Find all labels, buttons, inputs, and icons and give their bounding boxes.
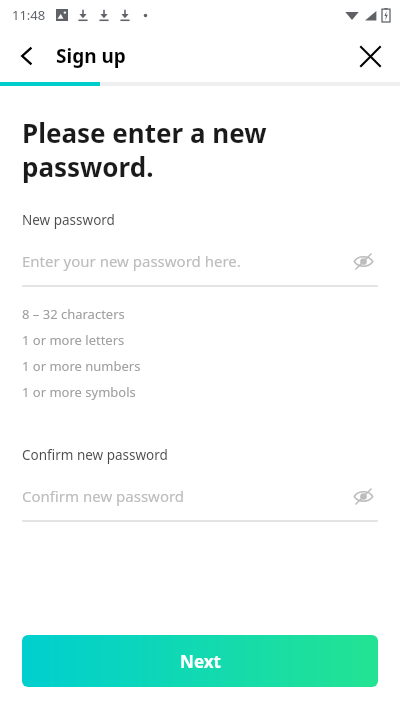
staticText: 1 or more symbols: [22, 383, 136, 401]
staticText: New password: [22, 211, 115, 229]
button[interactable]: Back: [6, 35, 48, 77]
button[interactable]: Next: [22, 635, 378, 687]
staticText: Enter your new password here.: [22, 251, 241, 271]
staticText: Next: [180, 650, 221, 673]
staticText: Please enter a new password.: [22, 115, 267, 184]
staticText: Confirm new password: [22, 486, 185, 506]
button[interactable]: Show password: [348, 483, 378, 509]
staticText: 8 – 32 characters: [22, 305, 125, 323]
button[interactable]: Close: [349, 35, 391, 77]
button[interactable]: Show password: [348, 248, 378, 274]
staticText: 11:48: [12, 6, 46, 24]
staticText: 1 or more letters: [22, 331, 125, 349]
staticText: Confirm new password: [22, 446, 168, 464]
staticText: 1 or more numbers: [22, 357, 141, 375]
staticText: Sign up: [56, 43, 126, 69]
